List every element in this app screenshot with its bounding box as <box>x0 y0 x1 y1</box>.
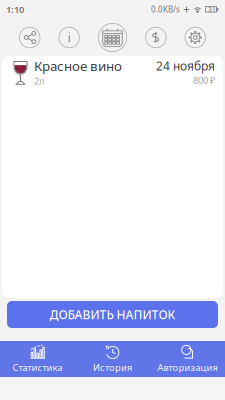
button[interactable]: Share <box>19 27 40 48</box>
button[interactable]: Calendar <box>98 23 127 52</box>
staticText: Авторизация <box>157 361 217 374</box>
button[interactable]: Статистика <box>0 340 75 378</box>
button[interactable]: ДОБАВИТЬ НАПИТОК <box>7 301 218 328</box>
staticText: 0.0KB/s <box>151 4 180 15</box>
button[interactable]: История <box>75 340 150 378</box>
button[interactable]: Settings <box>185 27 206 48</box>
staticText: ДОБАВИТЬ НАПИТОК <box>49 306 175 322</box>
staticText: 2л <box>34 75 44 87</box>
staticText: История <box>93 361 132 374</box>
button[interactable]: Info <box>59 27 79 48</box>
staticText: 1:10 <box>6 3 24 16</box>
staticText: 31 <box>208 5 216 14</box>
staticText: Красное вино <box>34 57 122 75</box>
staticText: Статистика <box>12 361 62 374</box>
button[interactable]: Красное вино <box>2 56 223 95</box>
button[interactable]: Авторизация <box>150 340 225 378</box>
staticText: 800 ₽ <box>193 74 215 86</box>
button[interactable]: Price <box>145 27 166 48</box>
staticText: 24 ноября <box>156 58 215 74</box>
